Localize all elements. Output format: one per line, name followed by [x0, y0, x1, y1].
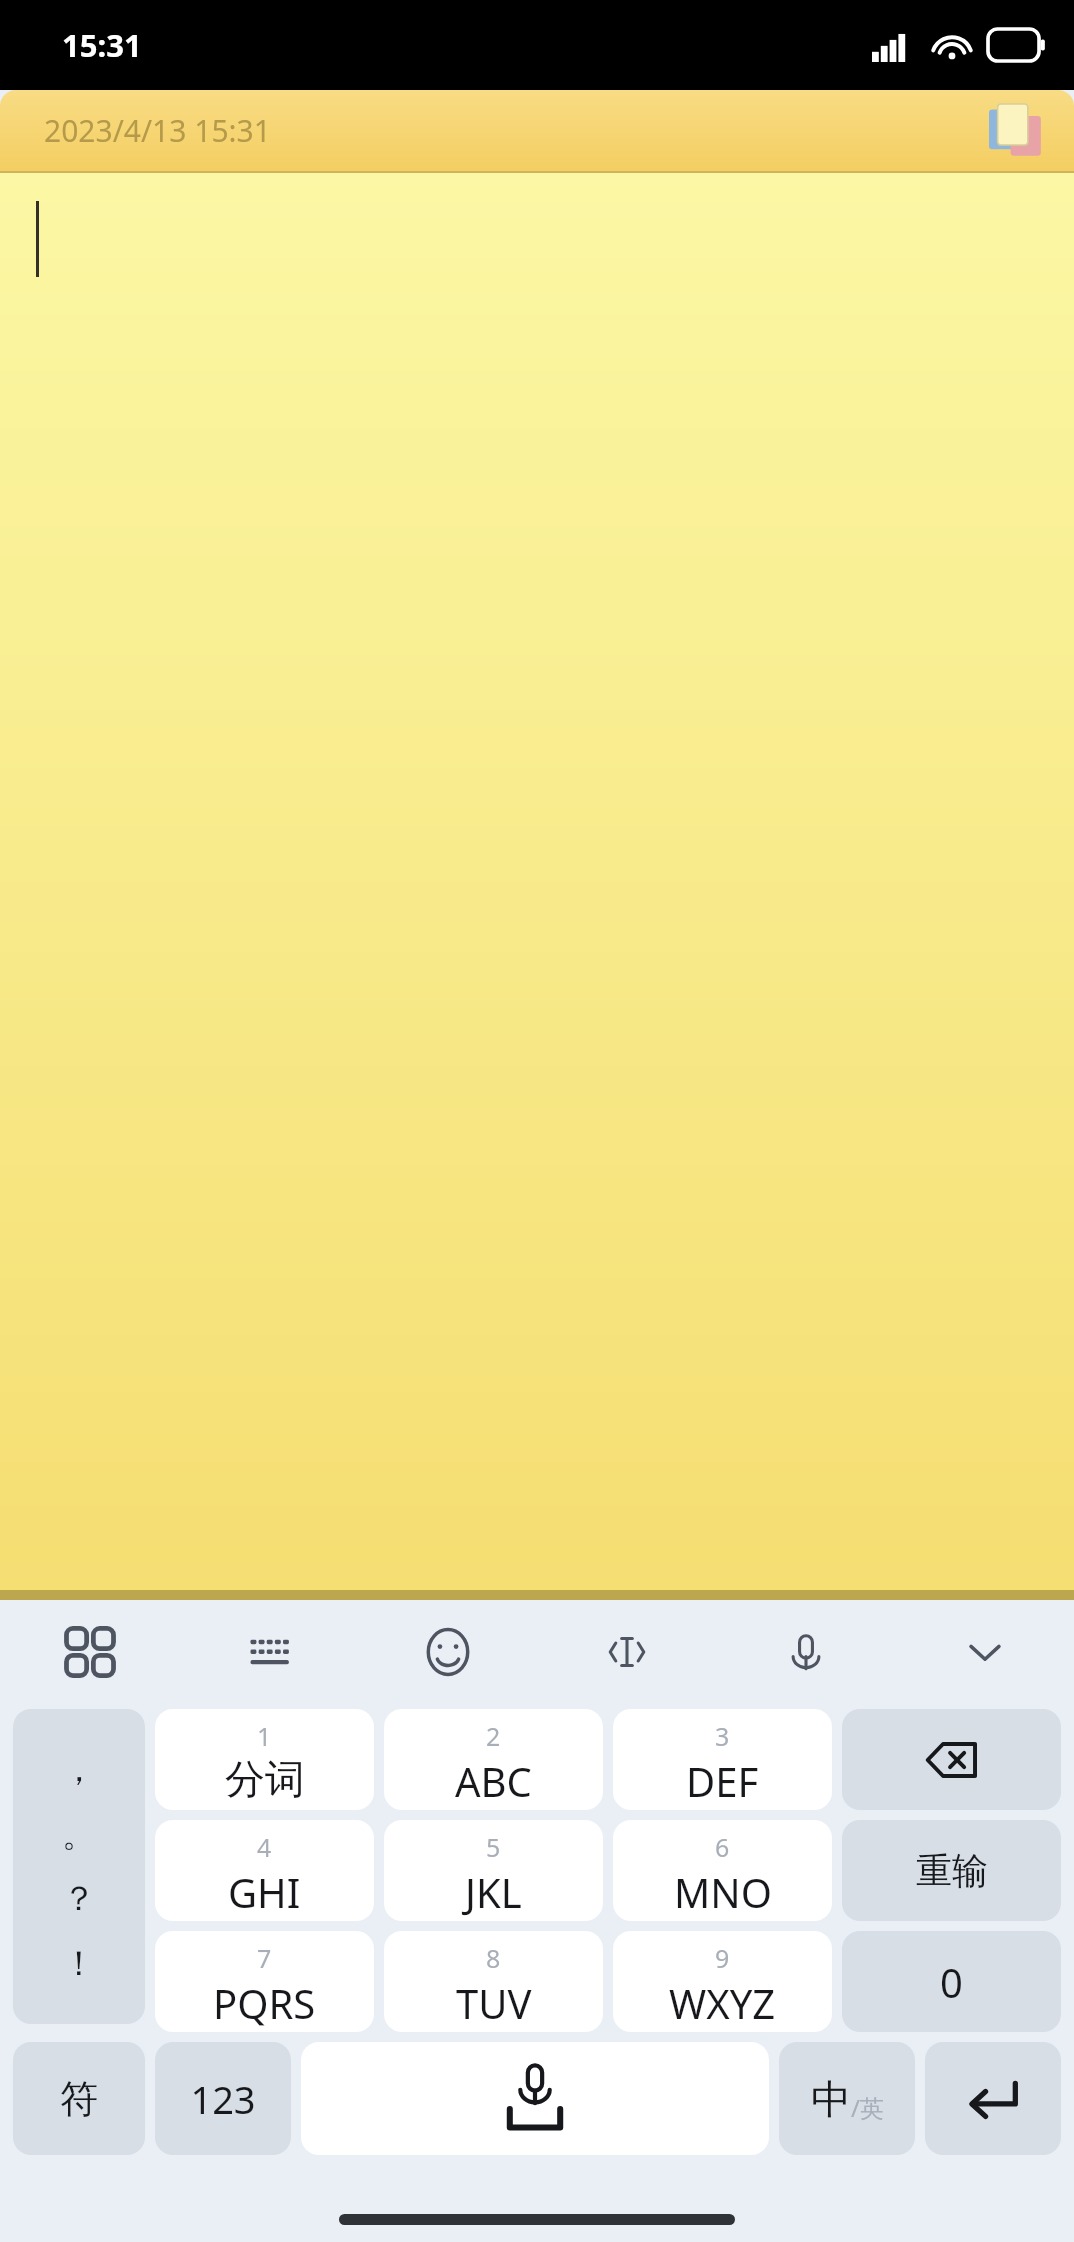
button[interactable]: 6: [613, 1820, 832, 1921]
button[interactable]: [0, 173, 1074, 1590]
staticText: 2023/4/13 15:31: [44, 110, 271, 151]
button[interactable]: Emoji: [358, 1600, 537, 1704]
staticText: 7: [257, 1941, 272, 1975]
staticText: 重输: [916, 1848, 988, 1893]
staticText: 0: [940, 1955, 963, 2009]
staticText: 8: [486, 1941, 501, 1975]
button[interactable]: 1: [155, 1709, 374, 1810]
button[interactable]: 中: [779, 2042, 915, 2155]
staticText: 中: [811, 2074, 851, 2124]
staticText: 6: [715, 1830, 730, 1864]
staticText: 。: [62, 1813, 96, 1856]
button[interactable]: 2: [384, 1709, 603, 1810]
button[interactable]: 123: [155, 2042, 291, 2155]
staticText: 2: [486, 1719, 501, 1753]
staticText: 分词: [225, 1754, 305, 1804]
staticText: WXYZ: [669, 1976, 776, 2030]
button[interactable]: 5: [384, 1820, 603, 1921]
staticText: 15:31: [62, 24, 142, 66]
staticText: ABC: [455, 1754, 532, 1808]
button[interactable]: Backspace: [842, 1709, 1061, 1810]
staticText: GHI: [228, 1865, 301, 1919]
staticText: 123: [190, 2073, 256, 2125]
staticText: TUV: [456, 1976, 532, 2030]
button[interactable]: ，: [13, 1709, 145, 2024]
button[interactable]: Space: [301, 2042, 769, 2155]
staticText: ？: [62, 1877, 96, 1920]
button[interactable]: 重输: [842, 1820, 1061, 1921]
staticText: 3: [715, 1719, 730, 1753]
staticText: ！: [62, 1942, 96, 1985]
button[interactable]: Hide keyboard: [895, 1600, 1074, 1704]
button[interactable]: Apps: [0, 1600, 179, 1704]
button[interactable]: Voice input: [716, 1600, 895, 1704]
staticText: 4: [257, 1830, 272, 1864]
staticText: DEF: [686, 1754, 759, 1808]
staticText: /英: [851, 2091, 884, 2124]
staticText: JKL: [465, 1865, 522, 1919]
staticText: 9: [715, 1941, 730, 1975]
button[interactable]: Keyboard layout: [179, 1600, 358, 1704]
staticText: 1: [257, 1719, 272, 1753]
staticText: 5: [486, 1830, 501, 1864]
staticText: 符: [60, 2075, 98, 2123]
button[interactable]: 符: [13, 2042, 145, 2155]
button[interactable]: 0: [842, 1931, 1061, 2032]
button[interactable]: Change note colour: [980, 95, 1052, 167]
staticText: PQRS: [213, 1976, 316, 2030]
button[interactable]: Edit cursor: [537, 1600, 716, 1704]
button[interactable]: 8: [384, 1931, 603, 2032]
staticText: MNO: [674, 1865, 772, 1919]
button[interactable]: Enter: [925, 2042, 1061, 2155]
button[interactable]: 9: [613, 1931, 832, 2032]
staticText: ，: [62, 1748, 96, 1791]
button[interactable]: 4: [155, 1820, 374, 1921]
button[interactable]: 3: [613, 1709, 832, 1810]
button[interactable]: 7: [155, 1931, 374, 2032]
